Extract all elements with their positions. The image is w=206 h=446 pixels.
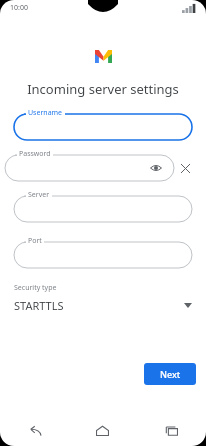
button[interactable]: Username <box>14 108 192 140</box>
button[interactable]: Next <box>144 363 196 385</box>
staticText: Server <box>28 190 50 200</box>
button[interactable]: Server <box>14 190 192 222</box>
button[interactable]: Home <box>68 416 137 446</box>
staticText: STARTTLS <box>14 298 64 313</box>
staticText: Security type <box>14 283 57 293</box>
button[interactable]: Clear password <box>174 157 196 179</box>
staticText: Port <box>28 236 42 246</box>
staticText: Password <box>19 149 51 159</box>
staticText: Next <box>160 368 181 380</box>
button[interactable]: Password <box>5 149 174 181</box>
button[interactable]: Security type <box>14 283 192 317</box>
button[interactable]: Show password <box>149 161 163 175</box>
button[interactable]: Back <box>0 416 68 446</box>
staticText: Username <box>28 108 63 118</box>
staticText: 10:00 <box>10 3 28 13</box>
button[interactable]: Port <box>14 236 192 268</box>
button[interactable]: Recent apps <box>137 416 206 446</box>
staticText: Incoming server settings <box>27 80 179 98</box>
